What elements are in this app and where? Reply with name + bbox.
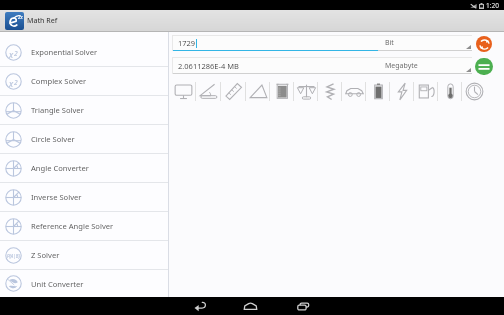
button[interactable]: Angle Converter	[0, 154, 168, 182]
staticText: Megabyte	[385, 61, 418, 71]
button[interactable]: Energy	[366, 81, 390, 102]
button[interactable]: Fuel	[414, 81, 438, 102]
staticText: Triangle Solver	[31, 105, 84, 115]
staticText: Bit	[385, 38, 394, 48]
button[interactable]: Unit Converter	[0, 270, 168, 297]
button[interactable]: P(A|B)	[0, 241, 168, 269]
staticText: Complex Solver	[31, 76, 87, 86]
button[interactable]: Calculate	[475, 58, 493, 75]
button[interactable]: Home	[228, 297, 272, 315]
staticText: Exponential Solver	[31, 47, 98, 57]
button[interactable]: Megabyte	[378, 57, 472, 74]
button[interactable]: Inverse Solver	[0, 183, 168, 211]
button[interactable]: Circle Solver	[0, 125, 168, 153]
staticText: Math Ref	[27, 16, 58, 26]
staticText: Unit Converter	[31, 279, 84, 289]
button[interactable]: x	[0, 67, 168, 95]
button[interactable]: Volume	[270, 81, 294, 102]
button[interactable]: Angle	[196, 81, 221, 102]
button[interactable]: x	[0, 38, 168, 66]
button[interactable]: Bit	[378, 35, 472, 51]
staticText: Circle Solver	[31, 134, 75, 144]
staticText: x	[9, 78, 14, 90]
button[interactable]: Speed	[342, 81, 366, 102]
button[interactable]: Swap units	[476, 36, 492, 52]
staticText: Reference Angle Solver	[31, 221, 114, 231]
staticText: 2	[14, 78, 18, 87]
button[interactable]: Recent apps	[281, 297, 325, 315]
button[interactable]: Screen size	[171, 81, 196, 102]
staticText: 2x	[18, 14, 23, 20]
button[interactable]: Reference Angle Solver	[0, 212, 168, 240]
staticText: Angle Converter	[31, 163, 89, 173]
staticText: 1729	[178, 38, 196, 48]
button[interactable]: Health	[318, 81, 342, 102]
button[interactable]: Back	[178, 297, 222, 315]
staticText: Z Solver	[31, 250, 60, 260]
button[interactable]: Power	[390, 81, 414, 102]
button[interactable]: Temperature	[438, 81, 462, 102]
button[interactable]: 2.0611286E-4 MB	[172, 57, 378, 74]
staticText: 2.0611286E-4 MB	[178, 61, 239, 71]
button[interactable]: Area	[246, 81, 270, 102]
staticText: P(A|B)	[7, 253, 20, 259]
button[interactable]: Triangle Solver	[0, 96, 168, 124]
staticText: 2	[14, 49, 18, 58]
staticText: x	[9, 49, 14, 61]
staticText: 1:20	[486, 1, 499, 10]
staticText: Inverse Solver	[31, 192, 82, 202]
button[interactable]: App icon	[5, 12, 24, 30]
button[interactable]: Time	[462, 81, 486, 102]
button[interactable]: Weight	[294, 81, 318, 102]
button[interactable]: 1729	[172, 35, 378, 51]
button[interactable]: Length	[221, 81, 246, 102]
